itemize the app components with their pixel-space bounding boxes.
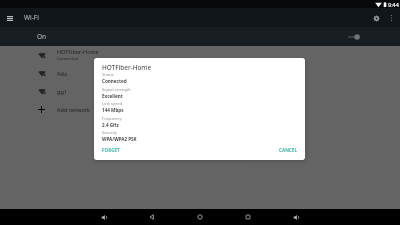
staticText: Add network <box>57 106 91 113</box>
staticText: HOTFiber-Home <box>57 48 99 55</box>
button[interactable]: gg1 <box>0 82 400 100</box>
button[interactable]: Ada <box>0 64 400 82</box>
button[interactable]: Volume down <box>96 209 112 225</box>
staticText: Link speed <box>102 101 123 106</box>
staticText: HOTFiber-Home <box>102 63 152 72</box>
staticText: gg1 <box>57 88 67 95</box>
button[interactable]: Back <box>144 209 160 225</box>
staticText: Connected <box>57 56 79 62</box>
button[interactable]: Volume up <box>288 209 304 225</box>
staticText: Ada <box>57 70 67 77</box>
button[interactable]: HOTFiber-Home <box>0 46 400 64</box>
staticText: Excellent <box>102 93 123 99</box>
staticText: Wi-Fi <box>24 13 39 22</box>
button[interactable]: Settings <box>369 11 383 25</box>
button[interactable]: Recent apps <box>240 209 256 225</box>
staticText: Status <box>102 72 114 77</box>
button[interactable]: Add network <box>0 100 400 118</box>
staticText: 2.4 GHz <box>102 122 119 128</box>
staticText: Frequency <box>102 116 122 121</box>
button[interactable]: FORGET <box>100 145 122 155</box>
button[interactable]: Navigation menu <box>3 11 17 25</box>
button[interactable]: CANCEL <box>277 145 299 155</box>
button[interactable]: Wi-Fi switch <box>347 30 365 44</box>
staticText: 144 Mbps <box>102 107 124 113</box>
staticText: FORGET <box>102 147 120 153</box>
staticText: On <box>37 32 47 41</box>
staticText: Signal strength <box>102 87 131 92</box>
button[interactable]: Home <box>192 209 208 225</box>
staticText: WPA/WPA2 PSK <box>102 136 137 142</box>
staticText: 9:44 <box>388 1 399 8</box>
staticText: Connected <box>102 78 127 84</box>
staticText: CANCEL <box>279 147 297 153</box>
button[interactable]: More options <box>385 12 397 24</box>
staticText: Security <box>102 130 118 135</box>
